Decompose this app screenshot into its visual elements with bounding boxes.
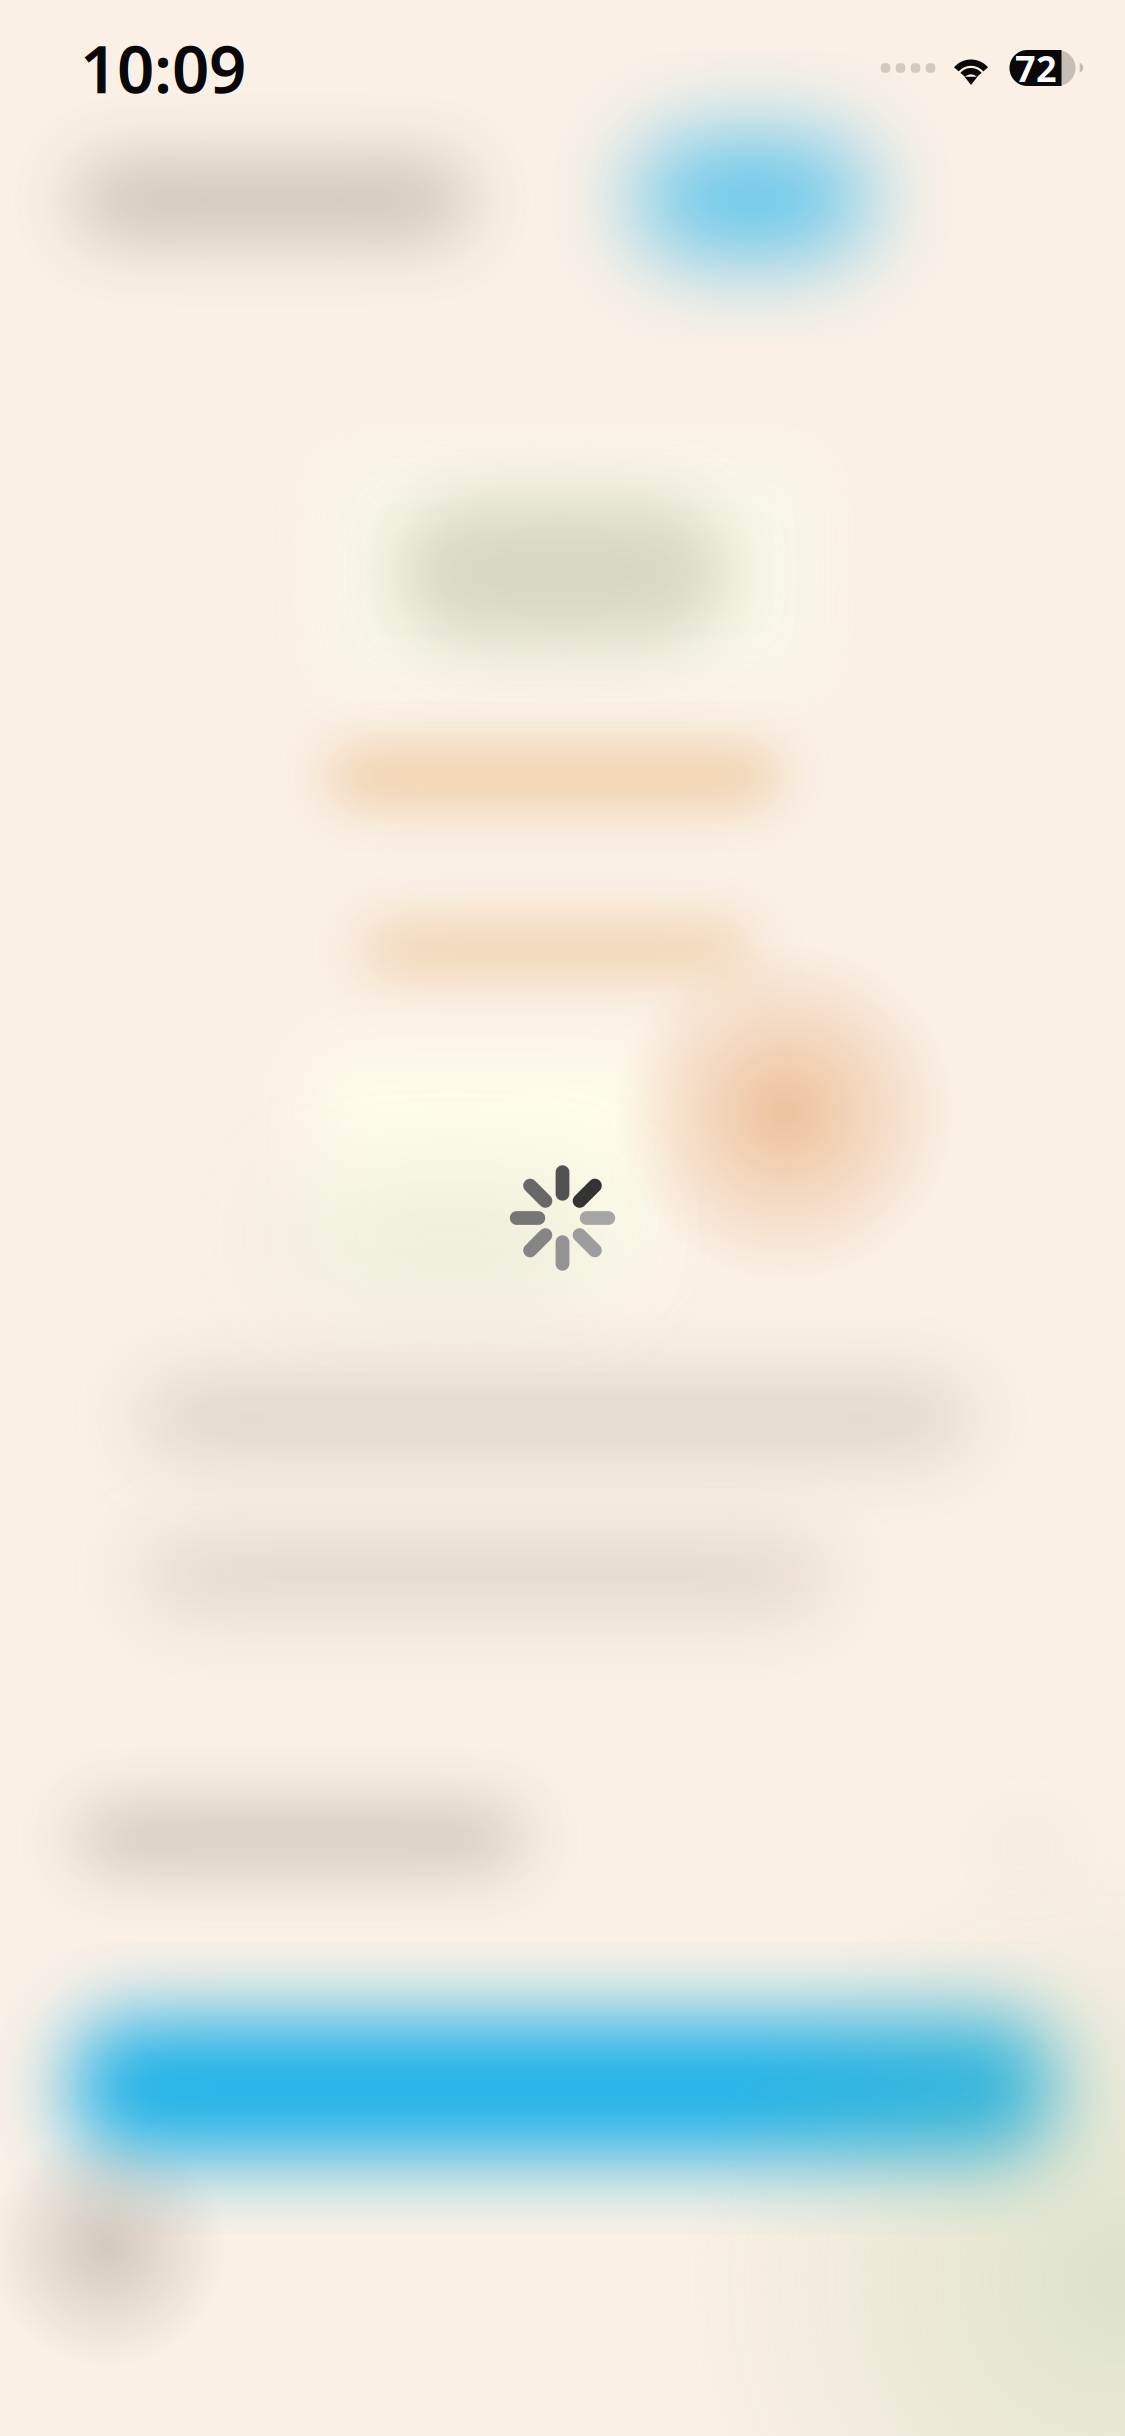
staticText: 10:09 [80, 25, 246, 111]
staticText: 72 [1015, 44, 1057, 92]
